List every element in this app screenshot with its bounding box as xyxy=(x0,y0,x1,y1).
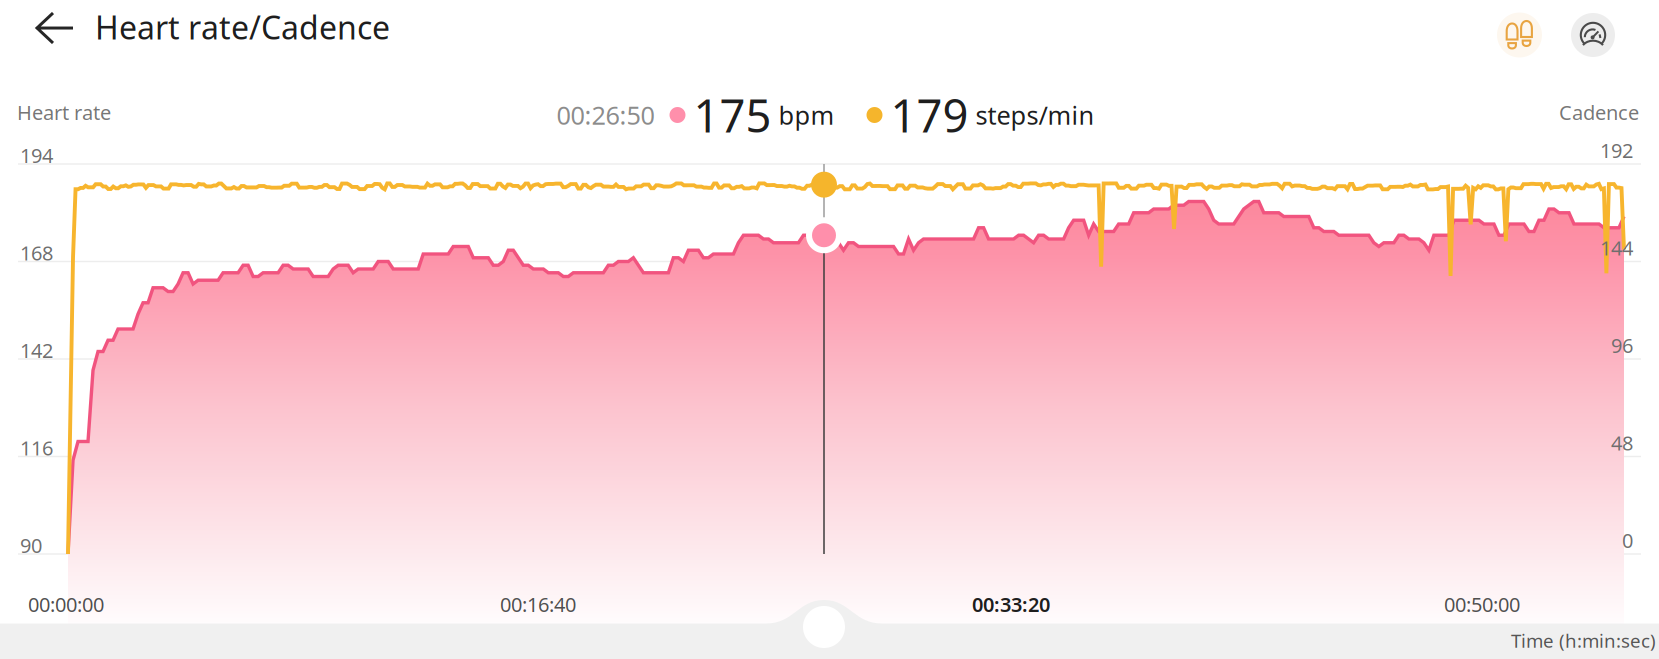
staticText: 48 xyxy=(1611,429,1633,456)
staticText: 194 xyxy=(20,142,53,169)
staticText: 144 xyxy=(1600,234,1633,261)
staticText: 00:00:00 xyxy=(28,591,104,618)
staticText: 0 xyxy=(1622,527,1633,554)
staticText: steps/min xyxy=(975,98,1094,132)
staticText: Cadence xyxy=(1559,99,1639,126)
staticText: 90 xyxy=(20,532,42,559)
staticText: 116 xyxy=(20,434,53,461)
staticText: 179 xyxy=(890,85,968,145)
staticText: 192 xyxy=(1600,137,1633,164)
staticText: 168 xyxy=(20,239,53,266)
staticText: 00:26:50 xyxy=(556,98,654,132)
button[interactable]: Speed xyxy=(1571,13,1615,57)
staticText: 175 xyxy=(693,85,771,145)
staticText: Heart rate/Cadence xyxy=(95,6,390,48)
button[interactable]: Heart rate/Cadence xyxy=(95,0,405,55)
staticText: Heart rate xyxy=(17,99,111,126)
staticText: 96 xyxy=(1611,332,1633,359)
staticText: 00:16:40 xyxy=(500,591,576,618)
staticText: Time (h:min:sec) xyxy=(1511,628,1656,653)
staticText: 00:50:00 xyxy=(1444,591,1520,618)
staticText: 00:33:20 xyxy=(972,591,1050,618)
button[interactable]: Back xyxy=(19,0,91,56)
staticText: bpm xyxy=(778,98,834,132)
staticText: 142 xyxy=(20,337,53,364)
button[interactable]: Steps xyxy=(1497,12,1542,57)
